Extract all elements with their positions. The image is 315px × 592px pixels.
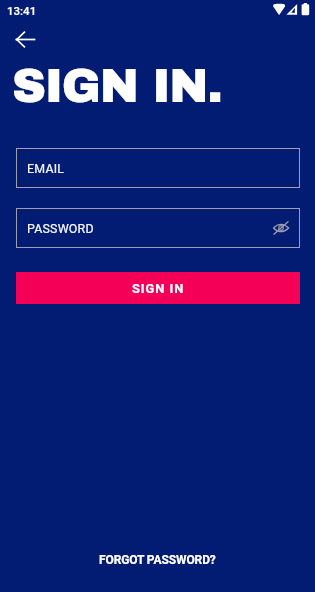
staticText: PASSWORD [27, 221, 94, 236]
staticText: SIGN IN. [12, 61, 222, 112]
staticText: EMAIL [27, 161, 65, 176]
button[interactable]: SIGN IN [16, 272, 300, 304]
button[interactable]: Back [3, 23, 47, 67]
button[interactable]: PASSWORD [16, 208, 300, 248]
staticText: FORGOT PASSWORD? [99, 553, 216, 567]
button[interactable]: Show password [271, 218, 291, 238]
staticText: SIGN IN [132, 281, 185, 296]
button[interactable]: EMAIL [16, 148, 300, 188]
staticText: 13:41 [7, 4, 37, 17]
button[interactable]: FORGOT PASSWORD? [0, 549, 315, 571]
